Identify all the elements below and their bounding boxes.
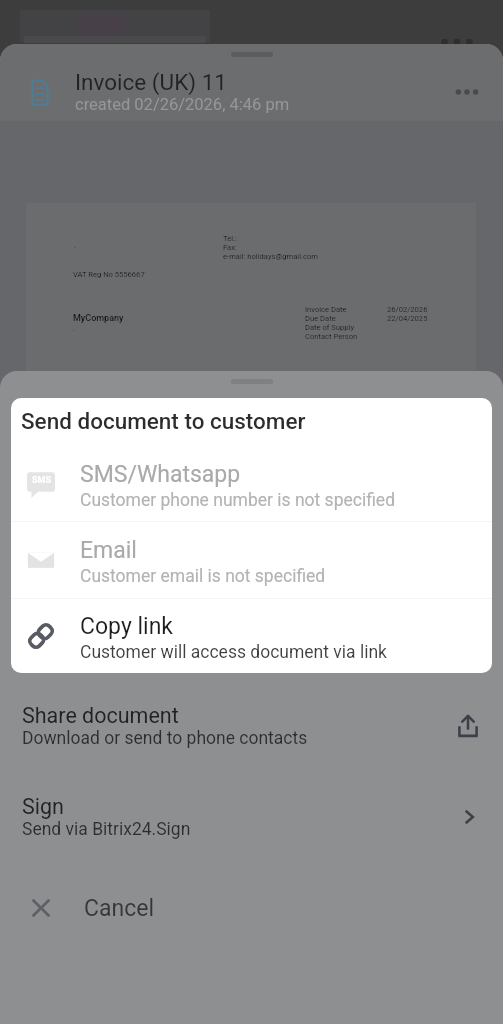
- staticText: SMS/Whatsapp: [80, 461, 241, 488]
- staticText: Share document: [22, 703, 179, 728]
- staticText: Customer will access document via link: [80, 642, 387, 663]
- staticText: e-mail: holidays@gmail.com: [223, 252, 318, 261]
- staticText: Email: [80, 537, 137, 564]
- staticText: VAT Reg No 5556667: [73, 270, 145, 279]
- staticText: Tel.:: [223, 234, 237, 243]
- staticText: Fax:: [223, 243, 237, 252]
- staticText: Download or send to phone contacts: [22, 728, 308, 749]
- staticText: Contact Person: [305, 332, 358, 341]
- button[interactable]: Sign: [0, 789, 503, 845]
- staticText: Customer phone number is not specified: [80, 490, 396, 511]
- staticText: Due Date: [305, 314, 336, 323]
- staticText: Date of Supply: [305, 323, 355, 332]
- staticText: Send via Bitrix24.Sign: [22, 819, 191, 840]
- staticText: Invoice Date: [305, 305, 347, 314]
- staticText: Sign: [22, 794, 64, 819]
- button[interactable]: Email: [11, 522, 492, 598]
- button[interactable]: SMS: [11, 447, 492, 521]
- staticText: Invoice (UK) 11: [75, 69, 227, 95]
- button[interactable]: Cancel: [0, 880, 503, 936]
- other: Sign: [457, 805, 481, 829]
- staticText: SMS: [32, 475, 51, 486]
- button[interactable]: Copy link: [11, 599, 492, 673]
- button[interactable]: More options: [451, 76, 483, 108]
- staticText: 26/02/2026: [387, 305, 428, 314]
- staticText: 22/04/2025: [387, 314, 428, 323]
- staticText: MyCompany: [73, 313, 124, 324]
- other: Share document: [455, 713, 481, 739]
- staticText: .: [74, 241, 77, 250]
- staticText: .: [73, 324, 76, 333]
- staticText: Copy link: [80, 613, 174, 640]
- staticText: Cancel: [84, 895, 155, 922]
- staticText: Send document to customer: [21, 408, 306, 434]
- staticText: Customer email is not specified: [80, 566, 326, 587]
- staticText: created 02/26/2026, 4:46 pm: [75, 95, 290, 114]
- button[interactable]: Share document: [0, 698, 503, 754]
